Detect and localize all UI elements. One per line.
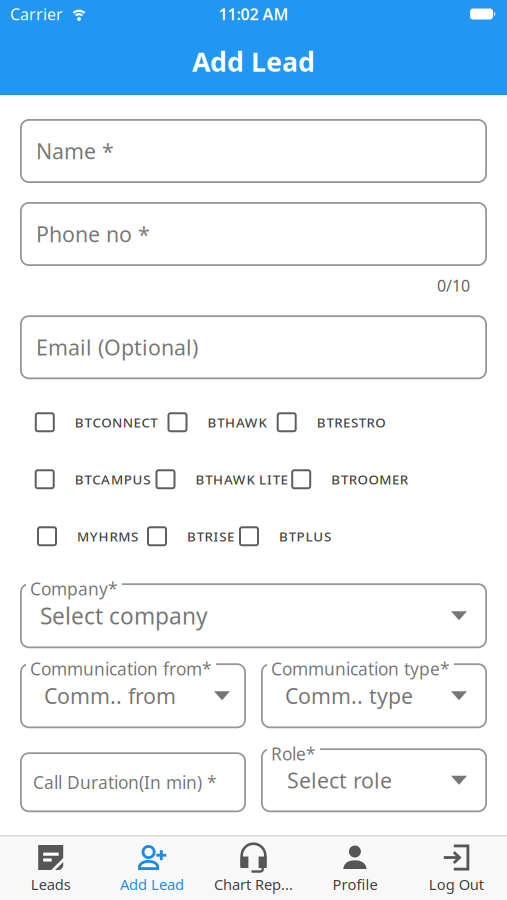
button[interactable]: Email (Optional): [20, 315, 487, 379]
button[interactable]: BTCONNECT: [39, 412, 173, 432]
staticText: BTPLUS: [279, 527, 331, 545]
button[interactable]: MYHRMS: [39, 526, 156, 546]
staticText: Leads: [31, 874, 71, 894]
staticText: BTROOMER: [331, 470, 408, 488]
staticText: Carrier: [10, 3, 63, 25]
button[interactable]: Comm.. type: [261, 657, 487, 728]
staticText: Phone no *: [36, 220, 150, 248]
staticText: Role*: [271, 742, 316, 765]
button[interactable]: Phone no *: [20, 202, 487, 266]
staticText: MYHRMS: [77, 527, 138, 545]
staticText: Add Lead: [120, 874, 184, 894]
button[interactable]: Call Duration(In min) *: [20, 752, 246, 812]
button[interactable]: Chart Rep...: [203, 843, 304, 894]
button[interactable]: BTHAWK: [173, 412, 281, 432]
staticText: Log Out: [429, 874, 484, 894]
staticText: Communication type*: [271, 657, 450, 680]
button[interactable]: BTRESTRO: [281, 412, 401, 432]
staticText: BTHAWK: [207, 413, 266, 431]
staticText: Company*: [30, 577, 118, 600]
button[interactable]: Profile: [304, 843, 406, 894]
staticText: 11:02 AM: [218, 3, 288, 25]
button[interactable]: BTRISE: [156, 526, 245, 546]
staticText: BTCONNECT: [75, 413, 157, 431]
staticText: Select role: [287, 766, 392, 794]
staticText: Name *: [36, 137, 114, 165]
staticText: Communication from*: [30, 657, 212, 680]
button[interactable]: BTROOMER: [297, 469, 422, 489]
staticText: Add Lead: [192, 44, 315, 79]
button[interactable]: BTHAWK LITE: [166, 469, 297, 489]
button[interactable]: BTCAMPUS: [39, 469, 166, 489]
button[interactable]: Log Out: [406, 843, 507, 894]
button[interactable]: BTPLUS: [245, 526, 345, 546]
button[interactable]: Select role: [261, 742, 487, 812]
staticText: Chart Rep...: [214, 874, 293, 894]
staticText: Email (Optional): [36, 333, 198, 361]
staticText: BTCAMPUS: [75, 470, 150, 488]
button[interactable]: Add Lead: [101, 843, 203, 894]
staticText: BTRESTRO: [317, 413, 385, 431]
staticText: Call Duration(In min) *: [33, 771, 217, 794]
button[interactable]: Name *: [20, 119, 487, 183]
staticText: BTRISE: [187, 527, 234, 545]
staticText: Comm.. from: [44, 682, 176, 710]
button[interactable]: Comm.. from: [20, 657, 246, 728]
staticText: Select company: [40, 601, 208, 631]
button[interactable]: Select company: [20, 577, 487, 648]
staticText: BTHAWK LITE: [195, 470, 287, 488]
staticText: Profile: [332, 874, 377, 894]
button[interactable]: Leads: [0, 843, 101, 894]
staticText: 0/10: [437, 275, 470, 296]
staticText: Comm.. type: [285, 682, 413, 710]
